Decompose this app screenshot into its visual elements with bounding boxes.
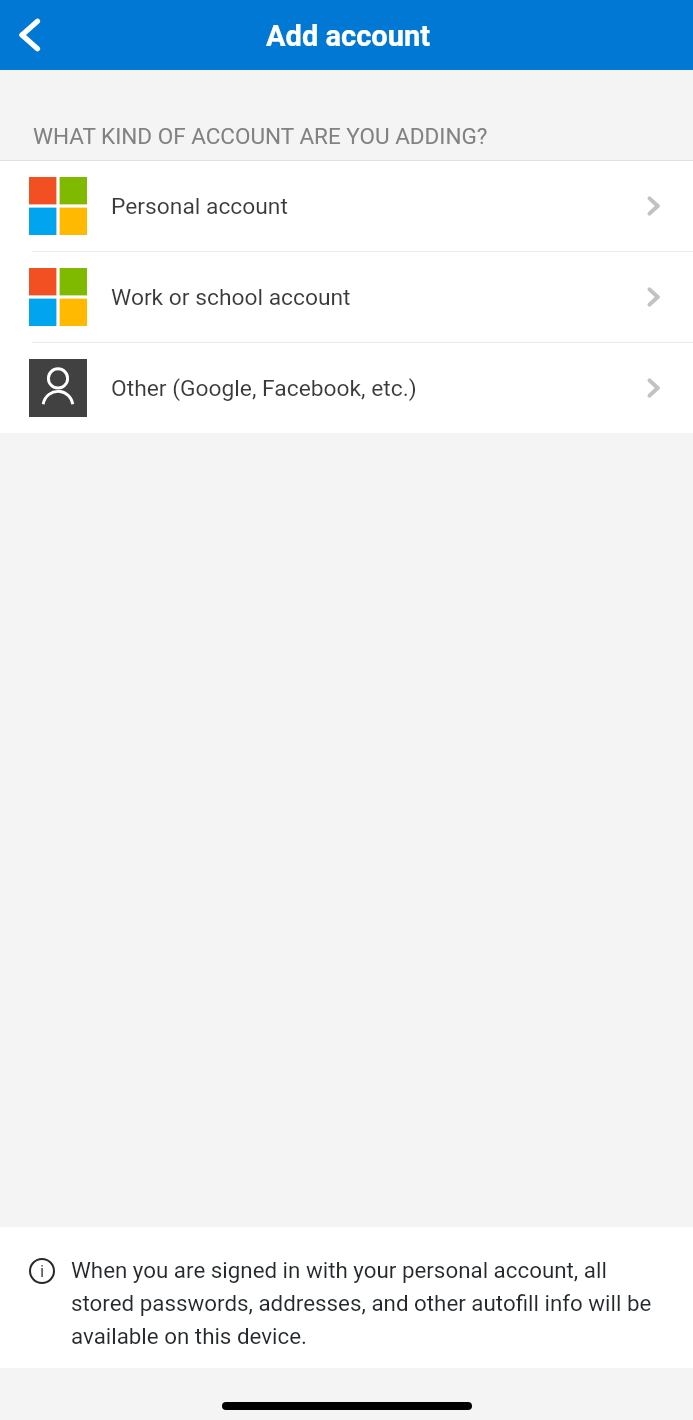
staticText: i bbox=[40, 1261, 45, 1281]
button[interactable]: Work or school account bbox=[0, 252, 693, 342]
button[interactable]: Personal account bbox=[0, 161, 693, 251]
staticText: Work or school account bbox=[111, 284, 630, 311]
staticText: Personal account bbox=[111, 193, 630, 220]
staticText: Other (Google, Facebook, etc.) bbox=[111, 375, 630, 402]
button[interactable]: Back bbox=[0, 0, 70, 70]
staticText: Add account bbox=[266, 19, 430, 53]
button[interactable]: Other (Google, Facebook, etc.) bbox=[0, 343, 693, 433]
staticText: WHAT KIND OF ACCOUNT ARE YOU ADDING? bbox=[33, 123, 488, 149]
staticText: When you are signed in with your persona… bbox=[71, 1257, 661, 1350]
